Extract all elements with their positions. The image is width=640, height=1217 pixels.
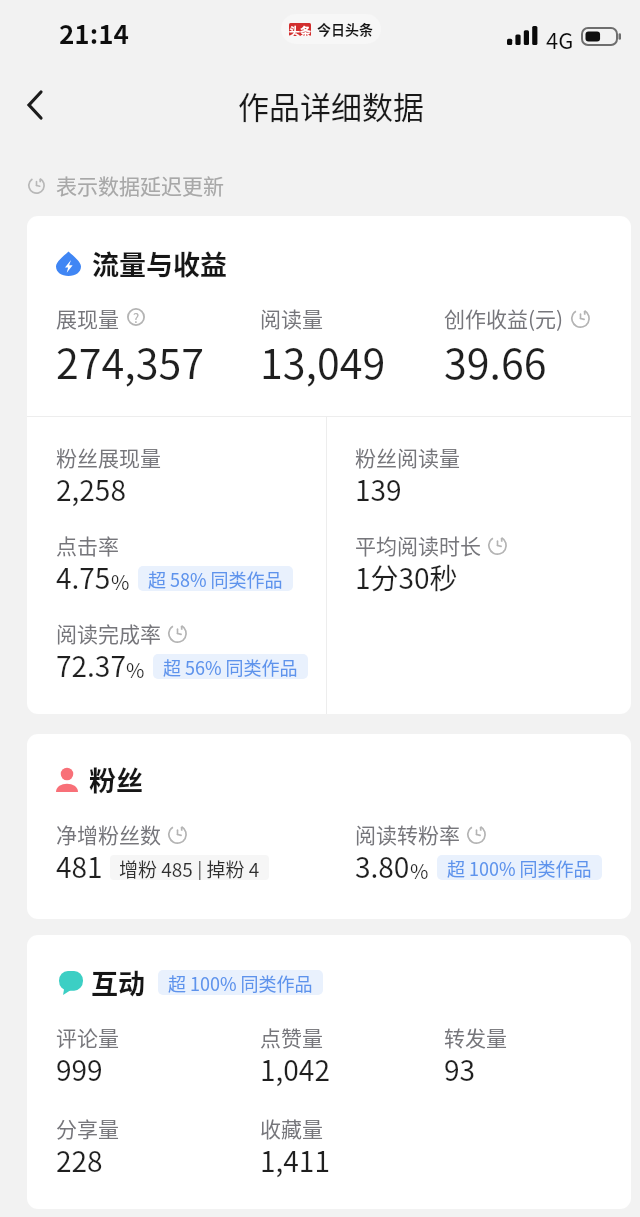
staticText: 平均阅读时长: [355, 530, 481, 560]
staticText: 999: [56, 1049, 103, 1090]
staticText: 93: [444, 1049, 476, 1090]
staticText: 互动: [91, 963, 145, 1002]
staticText: 创作收益(元): [444, 303, 564, 333]
staticText: 3.80: [355, 846, 410, 887]
staticText: 超 58% 同类作品: [148, 566, 283, 591]
staticText: %: [126, 655, 145, 684]
staticText: 评论量: [56, 1022, 119, 1052]
staticText: 粉丝: [89, 760, 143, 799]
staticText: 转发量: [444, 1022, 507, 1052]
staticText: 今日头条: [317, 19, 373, 39]
staticText: 展现量: [56, 303, 119, 333]
staticText: 阅读转粉率: [355, 819, 460, 849]
staticText: 1,411: [260, 1140, 330, 1181]
staticText: 净增粉丝数: [56, 819, 161, 849]
staticText: 39.66: [444, 331, 547, 390]
staticText: 流量与收益: [92, 244, 227, 283]
staticText: 收藏量: [260, 1113, 323, 1143]
staticText: 2,258: [56, 469, 126, 510]
staticText: %: [410, 856, 429, 885]
staticText: 21:14: [59, 14, 129, 52]
staticText: 阅读量: [260, 303, 323, 333]
staticText: 139: [355, 469, 402, 510]
staticText: 头条: [289, 23, 311, 36]
staticText: 274,357: [56, 331, 204, 390]
button[interactable]: Back: [5, 76, 61, 132]
staticText: 增粉 485 | 掉粉 4: [119, 855, 260, 880]
staticText: 粉丝阅读量: [355, 442, 460, 472]
staticText: 点击率: [56, 530, 119, 560]
staticText: 表示数据延迟更新: [56, 170, 224, 200]
staticText: 1,042: [260, 1049, 330, 1090]
staticText: 超 100% 同类作品: [447, 855, 592, 880]
staticText: 阅读完成率: [56, 618, 161, 648]
staticText: 分享量: [56, 1113, 119, 1143]
staticText: 72.37: [56, 645, 126, 686]
staticText: 481: [56, 846, 103, 887]
staticText: %: [111, 567, 130, 596]
staticText: 1分30秒: [355, 557, 458, 598]
staticText: 超 100% 同类作品: [168, 970, 313, 995]
staticText: 作品详细数据: [238, 83, 424, 128]
staticText: ?: [133, 308, 140, 326]
staticText: 13,049: [260, 331, 386, 390]
staticText: 4G: [546, 23, 574, 55]
staticText: 4.75: [56, 557, 111, 598]
staticText: 点赞量: [260, 1022, 323, 1052]
staticText: 228: [56, 1140, 103, 1181]
staticText: 粉丝展现量: [56, 442, 161, 472]
staticText: 超 56% 同类作品: [163, 654, 298, 679]
